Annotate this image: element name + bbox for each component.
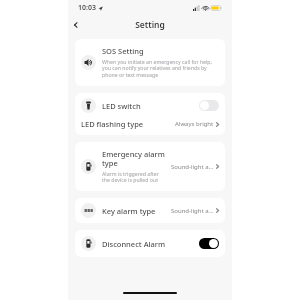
button[interactable]: Disconnect Alarm (75, 230, 225, 257)
staticText: SOS Setting (102, 46, 144, 56)
button[interactable]: Toggle off (199, 100, 219, 111)
button[interactable]: LED flashing type (75, 118, 225, 135)
staticText: Disconnect Alarm (102, 239, 166, 249)
staticText: Emergency alarm type (102, 149, 168, 169)
button[interactable]: Emergency alarm type (75, 142, 225, 191)
staticText: When you initiate an emergency call for … (102, 58, 219, 79)
staticText: Alarm is triggered after the device is p… (102, 170, 168, 184)
staticText: 10:03 (78, 3, 96, 13)
staticText: Always bright (175, 120, 214, 128)
button[interactable]: Key alarm type (75, 198, 225, 223)
staticText: Setting (135, 19, 165, 31)
staticText: Sound-light a... (171, 207, 214, 215)
staticText: Key alarm type (102, 206, 156, 216)
button[interactable]: SOS Setting (75, 39, 225, 86)
staticText: LED switch (102, 101, 141, 111)
button[interactable]: Toggle on (199, 238, 219, 249)
staticText: LED flashing type (81, 119, 144, 129)
button[interactable]: Back (68, 17, 84, 33)
staticText: Sound-light a... (171, 163, 214, 171)
button[interactable]: LED switch (75, 93, 225, 118)
